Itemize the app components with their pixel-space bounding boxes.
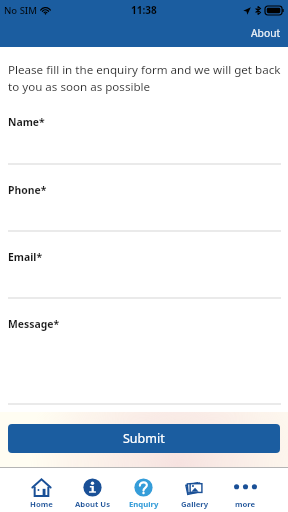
staticText: Email* — [8, 250, 43, 264]
button[interactable]: Gallery — [169, 468, 220, 512]
staticText: About Us — [75, 499, 110, 509]
staticText: Message* — [8, 317, 60, 331]
button[interactable]: more — [220, 468, 271, 512]
staticText: Please fill in the enquiry form and we w… — [8, 62, 281, 95]
button[interactable]: About — [251, 20, 281, 47]
button[interactable]: Submit — [8, 424, 280, 453]
staticText: 11:38 — [131, 3, 157, 17]
staticText: No SIM — [4, 4, 37, 17]
staticText: Home — [30, 499, 53, 509]
staticText: Name* — [8, 115, 45, 129]
button[interactable]: Home — [16, 468, 67, 512]
staticText: more — [235, 499, 256, 509]
staticText: Gallery — [181, 499, 209, 509]
button[interactable]: Enquiry — [118, 468, 169, 512]
staticText: About — [251, 26, 281, 40]
staticText: Submit — [123, 430, 165, 447]
staticText: Enquiry — [129, 499, 159, 509]
staticText: Phone* — [8, 183, 47, 197]
button[interactable]: About Us — [67, 468, 118, 512]
